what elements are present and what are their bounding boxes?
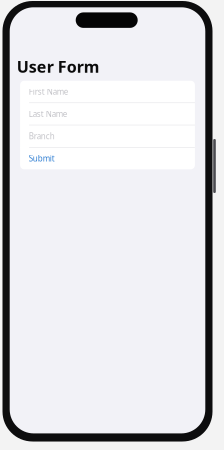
staticText: Last Name: [29, 109, 68, 119]
staticText: Submit: [29, 153, 55, 164]
staticText: First Name: [29, 86, 69, 97]
staticText: Branch: [29, 131, 55, 141]
button[interactable]: Branch: [20, 125, 195, 147]
button[interactable]: First Name: [20, 81, 195, 102]
button[interactable]: Last Name: [20, 103, 195, 125]
staticText: User Form: [17, 56, 100, 77]
button[interactable]: Submit: [20, 148, 195, 169]
